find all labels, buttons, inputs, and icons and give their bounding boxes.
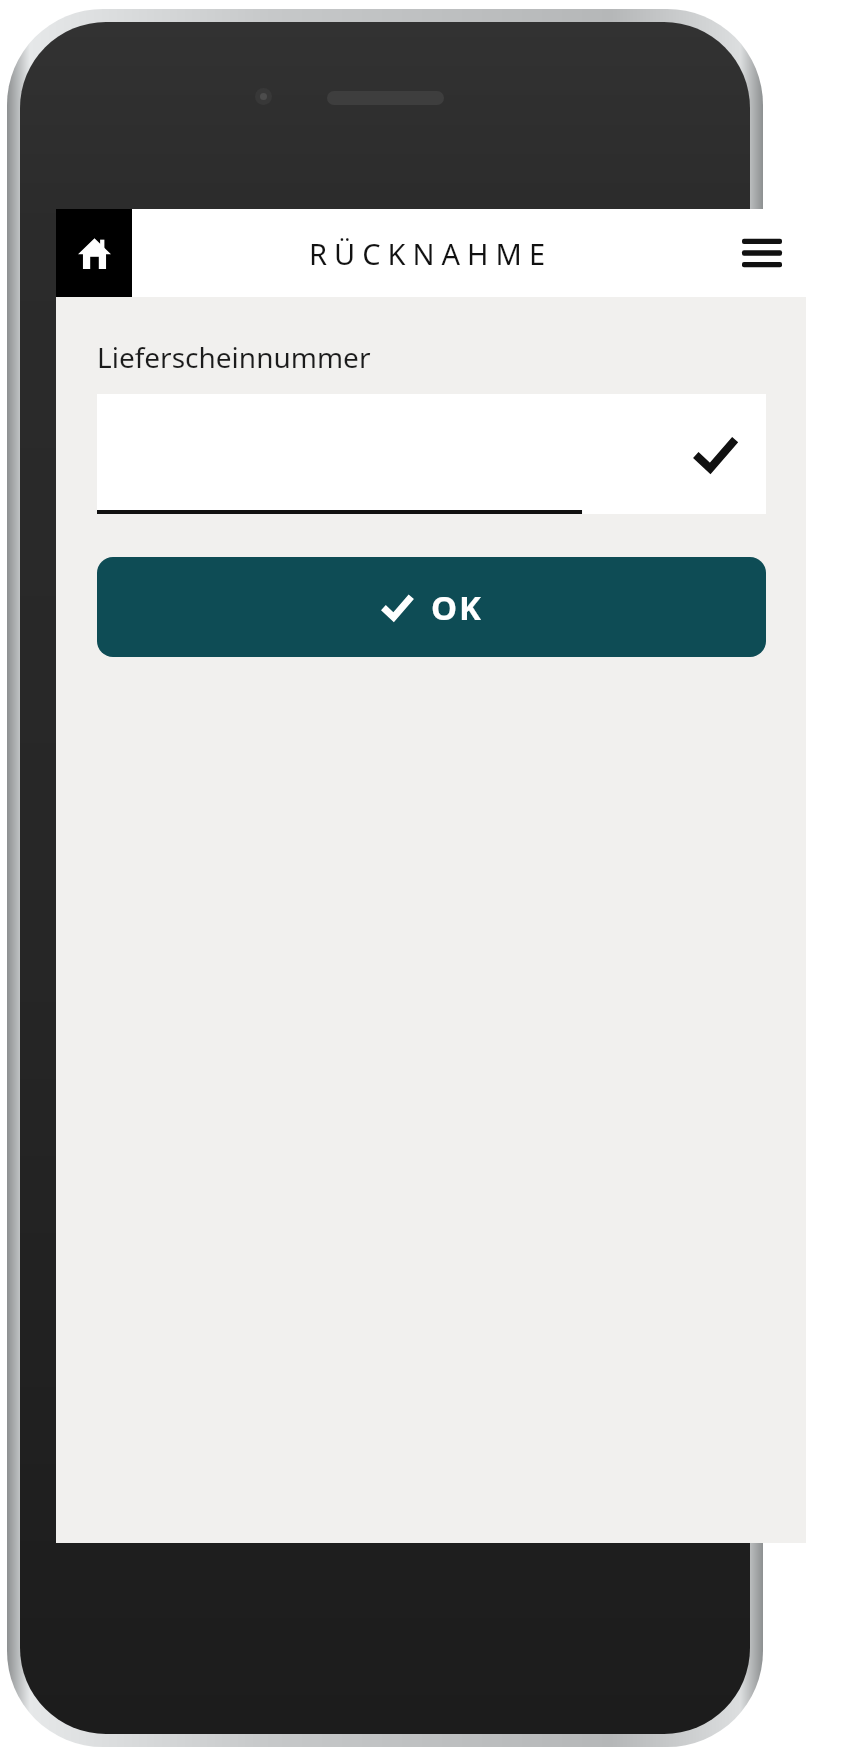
- staticText: Lieferscheinnummer: [97, 338, 371, 376]
- staticText: OK: [431, 585, 484, 630]
- button[interactable]: Home: [56, 209, 132, 297]
- button[interactable]: Menu: [718, 209, 806, 297]
- staticText: RÜCKNAHME: [309, 234, 553, 273]
- button[interactable]: OK: [97, 557, 766, 657]
- button[interactable]: [97, 394, 766, 514]
